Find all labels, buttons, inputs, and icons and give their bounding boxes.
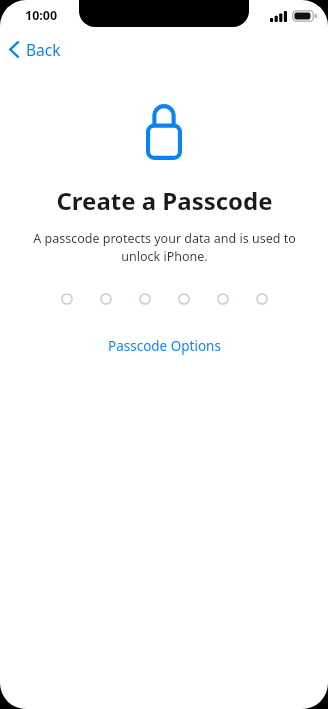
staticText: 10:00 <box>25 7 58 24</box>
staticText: Passcode Options <box>108 337 221 355</box>
staticText: Back <box>26 39 61 60</box>
staticText: Create a Passcode <box>56 184 273 217</box>
button[interactable]: Passcode Options <box>94 332 235 360</box>
button[interactable]: Back <box>0 35 71 64</box>
staticText: A passcode protects your data and is use… <box>33 230 296 265</box>
